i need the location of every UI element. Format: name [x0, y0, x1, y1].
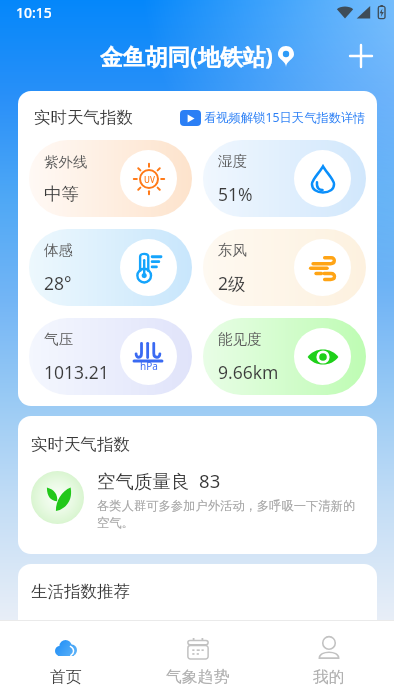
button[interactable]: 能见度 [203, 318, 366, 395]
button[interactable]: 湿度 [203, 140, 366, 217]
staticText: 能见度 [218, 330, 262, 348]
staticText: 空气质量良 83 [97, 468, 221, 493]
staticText: 气象趋势 [166, 667, 230, 687]
staticText: UV [144, 174, 155, 185]
staticText: 金鱼胡同(地铁站) [100, 41, 273, 72]
staticText: 各类人群可多参加户外活动，多呼吸一下清新的空气。 [97, 498, 359, 531]
button[interactable]: 金鱼胡同(地铁站) [100, 41, 294, 72]
button[interactable]: Add city [342, 37, 380, 75]
button[interactable]: 气象趋势 [132, 621, 263, 700]
button[interactable]: 体感 [29, 229, 192, 306]
button[interactable]: 我的 [263, 621, 394, 700]
button[interactable]: 紫外线 [29, 140, 192, 217]
button[interactable]: 首页 [0, 621, 132, 700]
button[interactable]: 气压 [29, 318, 192, 395]
staticText: 2级 [218, 271, 246, 295]
staticText: 我的 [313, 667, 345, 687]
staticText: 东风 [218, 241, 247, 259]
staticText: 湿度 [218, 152, 247, 170]
staticText: 1013.21 [44, 360, 109, 384]
staticText: 紫外线 [44, 153, 88, 171]
staticText: 实时天气指数 [34, 107, 133, 128]
staticText: hPa [140, 359, 158, 373]
button[interactable]: 东风 [203, 229, 366, 306]
staticText: 气压 [44, 330, 73, 348]
staticText: 看视频解锁15日天气指数详情 [204, 109, 366, 126]
staticText: 体感 [44, 241, 73, 259]
staticText: 实时天气指数 [31, 434, 130, 455]
staticText: 51% [218, 182, 253, 206]
button[interactable]: 看视频解锁15日天气指数详情 [180, 109, 366, 126]
button[interactable]: 实时天气指数 [18, 416, 377, 554]
staticText: 28° [44, 271, 72, 295]
staticText: 首页 [50, 667, 82, 687]
staticText: 10:15 [16, 3, 52, 22]
staticText: 生活指数推荐 [31, 581, 130, 602]
staticText: 9.66km [218, 360, 279, 384]
staticText: 中等 [44, 183, 79, 205]
